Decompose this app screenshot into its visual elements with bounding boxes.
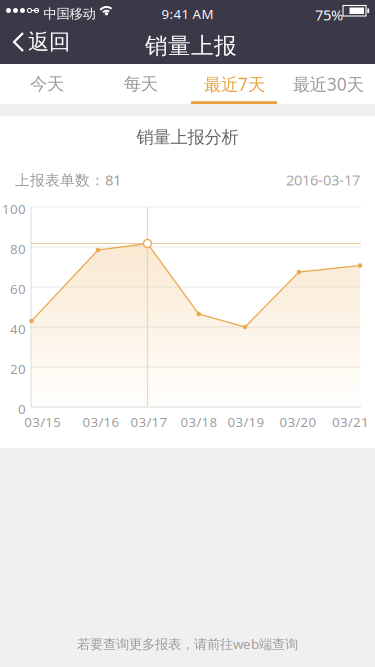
staticText: 最近7天 — [204, 72, 265, 95]
staticText: 03/20 — [279, 413, 316, 431]
staticText: 若要查询更多报表，请前往web端查询 — [77, 635, 298, 653]
staticText: 100 — [2, 200, 26, 218]
staticText: 03/21 — [332, 413, 369, 431]
staticText: 80 — [10, 240, 26, 258]
button[interactable]: 最近30天 — [281, 64, 375, 104]
staticText: 60 — [10, 280, 26, 298]
staticText: 0 — [18, 400, 26, 418]
staticText: 03/17 — [130, 413, 167, 431]
staticText: 75% — [315, 5, 343, 24]
staticText: 40 — [10, 320, 26, 338]
staticText: 2016-03-17 — [286, 170, 360, 189]
staticText: 销量上报分析 — [136, 126, 238, 148]
staticText: 销量上报 — [145, 32, 237, 60]
staticText: 最近30天 — [293, 72, 364, 95]
staticText: 每天 — [124, 73, 158, 95]
staticText: 今天 — [30, 73, 64, 95]
staticText: 03/18 — [180, 413, 217, 431]
staticText: 9:41 AM — [161, 5, 213, 23]
staticText: 20 — [10, 360, 26, 378]
button[interactable]: 最近7天 — [187, 64, 281, 104]
staticText: 返回 — [28, 29, 70, 55]
staticText: 03/19 — [227, 413, 264, 431]
button[interactable]: 今天 — [0, 64, 94, 104]
button[interactable]: 返回 — [0, 20, 70, 64]
staticText: 中国移动 — [43, 5, 95, 22]
staticText: 03/16 — [82, 413, 119, 431]
button[interactable]: 每天 — [94, 64, 188, 104]
staticText: 上报表单数：81 — [15, 170, 121, 189]
staticText: 03/15 — [24, 413, 61, 431]
